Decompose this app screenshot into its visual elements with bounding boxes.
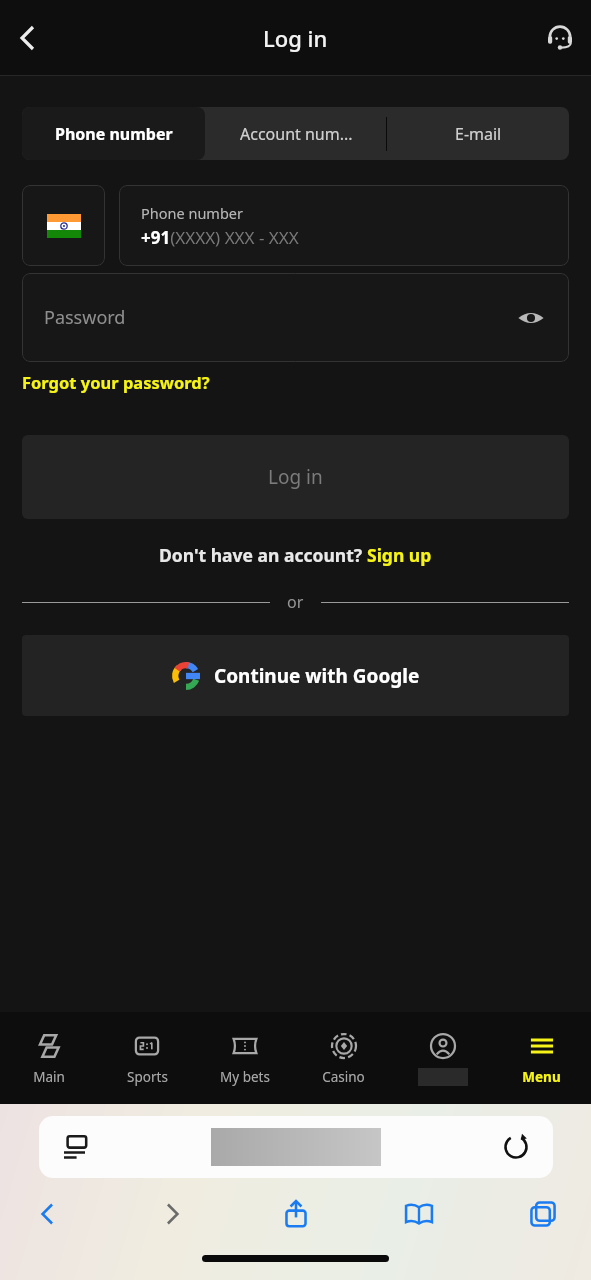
- button[interactable]: Casino: [294, 1012, 393, 1104]
- staticText: Main: [33, 1068, 65, 1086]
- button[interactable]: Bookmarks: [397, 1192, 441, 1236]
- button[interactable]: Log in: [22, 435, 569, 519]
- button[interactable]: Country code: [22, 185, 105, 266]
- staticText: Log in: [263, 23, 328, 53]
- button[interactable]: Password: [22, 273, 569, 362]
- button[interactable]: Menu: [492, 1012, 591, 1104]
- staticText: My bets: [220, 1068, 270, 1086]
- staticText: Sports: [127, 1068, 168, 1086]
- staticText: Casino: [322, 1068, 365, 1086]
- button[interactable]: Tabs: [521, 1192, 565, 1236]
- button[interactable]: Reload: [501, 1132, 531, 1162]
- button[interactable]: Continue with Google: [22, 635, 569, 716]
- staticText: Don't have an account?: [159, 543, 367, 567]
- staticText: Menu: [522, 1068, 561, 1086]
- staticText: +91(XXXX) XXX - XXX: [141, 226, 299, 249]
- other: Page settings: [61, 1132, 91, 1162]
- staticText: E-mail: [455, 123, 502, 145]
- button[interactable]: Forgot your password?: [22, 371, 210, 393]
- button[interactable]: Profile: [393, 1012, 492, 1104]
- button[interactable]: Sports: [98, 1012, 196, 1104]
- button[interactable]: Forward: [150, 1192, 194, 1236]
- staticText: Phone number: [141, 203, 243, 223]
- button[interactable]: Account num...: [205, 107, 387, 160]
- button[interactable]: Share: [274, 1192, 318, 1236]
- button[interactable]: Show password: [513, 300, 549, 336]
- button[interactable]: Phone number: [119, 185, 569, 266]
- button[interactable]: Back: [26, 1192, 70, 1236]
- button[interactable]: Sign up: [367, 543, 432, 567]
- staticText: Continue with Google: [214, 663, 420, 689]
- staticText: Log in: [268, 464, 323, 490]
- button[interactable]: E-mail: [387, 107, 569, 160]
- staticText: Phone number: [55, 123, 173, 145]
- button[interactable]: Back: [8, 18, 48, 58]
- button[interactable]: My bets: [196, 1012, 294, 1104]
- staticText: or: [287, 591, 304, 613]
- staticText: Account num...: [240, 123, 353, 145]
- button[interactable]: Phone number: [22, 107, 205, 160]
- button[interactable]: Page settings: [39, 1116, 553, 1178]
- staticText: Password: [44, 305, 126, 330]
- button[interactable]: Main: [0, 1012, 98, 1104]
- button[interactable]: Support: [538, 16, 582, 60]
